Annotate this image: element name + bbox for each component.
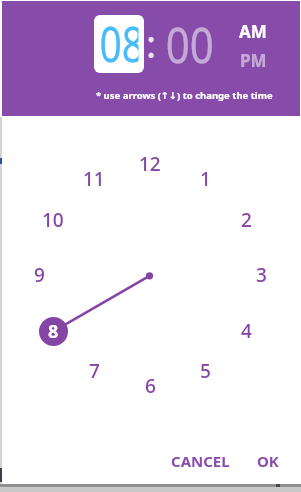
staticText: 08 (99, 15, 138, 67)
button[interactable]: 4 (231, 318, 261, 342)
button[interactable]: 9 (24, 262, 54, 286)
staticText: AM (239, 20, 267, 43)
staticText: 10 (42, 207, 64, 231)
staticText: 6 (145, 373, 156, 397)
staticText: 11 (83, 166, 105, 190)
staticText: : (146, 17, 157, 69)
staticText: 1 (200, 166, 211, 190)
button[interactable]: AM (230, 19, 276, 43)
staticText: 12 (139, 151, 161, 175)
button[interactable]: 3 (246, 262, 276, 286)
staticText: 4 (241, 318, 252, 342)
staticText: 2 (241, 207, 252, 231)
button[interactable]: 1 (190, 166, 220, 190)
staticText: 5 (200, 358, 211, 382)
staticText: * use arrows (↑↓) to change the time (96, 89, 273, 102)
button[interactable]: 11 (79, 166, 109, 190)
staticText: 00 (166, 10, 214, 68)
button[interactable]: 00 (150, 10, 230, 68)
staticText: CANCEL (171, 451, 230, 471)
staticText: PM (240, 49, 267, 72)
button[interactable]: 2 (231, 207, 261, 231)
button[interactable]: 6 (135, 373, 165, 397)
button[interactable]: 5 (190, 358, 220, 382)
button[interactable]: 10 (38, 207, 68, 231)
button[interactable]: 7 (79, 358, 109, 382)
button[interactable]: 8 (39, 317, 68, 346)
button[interactable]: 08 (94, 15, 144, 73)
button[interactable]: OK (246, 443, 290, 479)
staticText: 3 (256, 262, 267, 286)
staticText: 7 (89, 358, 100, 382)
staticText: 9 (34, 262, 45, 286)
button[interactable]: PM (230, 48, 276, 72)
button[interactable]: 12 (135, 151, 165, 175)
button[interactable]: CANCEL (161, 443, 239, 479)
staticText: 8 (48, 319, 59, 344)
staticText: OK (257, 451, 279, 471)
